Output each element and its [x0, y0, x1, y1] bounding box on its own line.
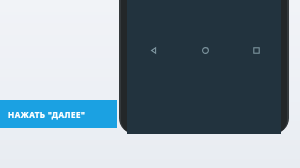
staticText: НАЖАТЬ "ДАЛЕЕ": [8, 109, 86, 120]
button[interactable]: Home: [196, 41, 214, 59]
button[interactable]: Recent apps: [247, 41, 265, 59]
button[interactable]: НАЖАТЬ "ДАЛЕЕ": [0, 100, 117, 128]
button[interactable]: Back: [144, 41, 162, 59]
